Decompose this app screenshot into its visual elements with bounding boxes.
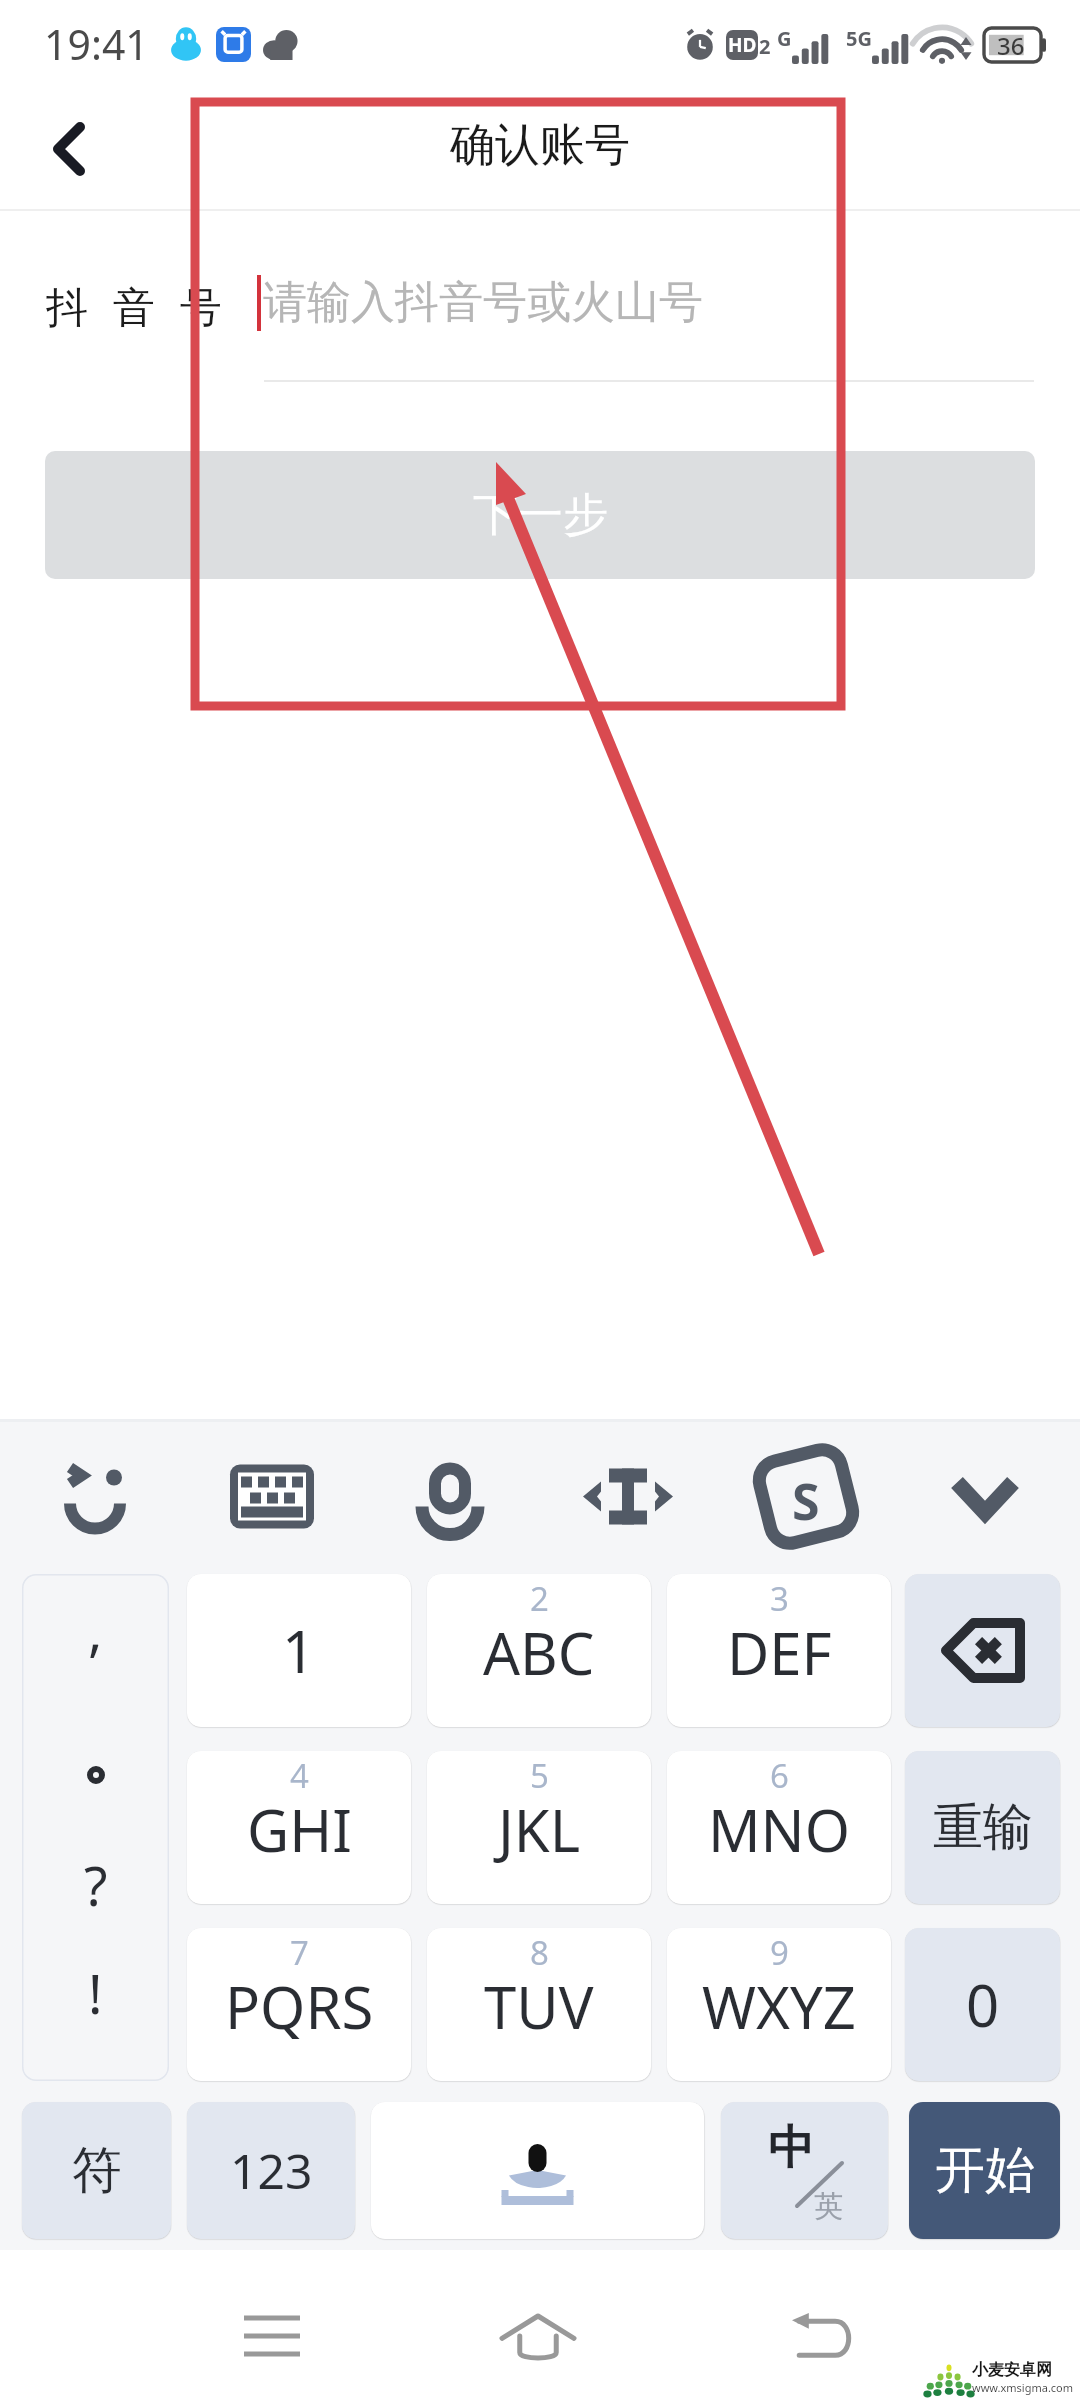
button[interactable] [371, 2102, 704, 2239]
staticText: 5 [530, 1753, 549, 1798]
button[interactable]: Home [478, 2276, 598, 2396]
button[interactable]: 6 [667, 1751, 891, 1904]
button[interactable]: 符 [22, 2102, 171, 2239]
staticText: 123 [230, 2138, 313, 2203]
staticText: WXYZ [702, 1967, 856, 2046]
button[interactable]: 7 [187, 1928, 411, 2081]
staticText: TUV [484, 1967, 594, 2046]
button[interactable]: 5 [427, 1751, 651, 1904]
button[interactable]: 4 [187, 1751, 411, 1904]
staticText: 2 [759, 33, 771, 60]
staticText: 重输 [933, 1796, 1033, 1859]
button[interactable]: , [22, 1574, 169, 2081]
staticText: 9 [770, 1930, 789, 1975]
staticText: 6 [770, 1753, 789, 1798]
staticText: G [777, 25, 792, 52]
staticText: MNO [708, 1790, 850, 1869]
button[interactable]: Emoji [0, 1419, 180, 1574]
staticText: 请输入抖音号或火山号 [263, 275, 703, 330]
staticText: 36 [997, 29, 1025, 62]
staticText: JKL [498, 1790, 581, 1869]
staticText: GHI [247, 1790, 352, 1869]
button[interactable]: 2 [427, 1574, 651, 1727]
staticText: 下一步 [473, 487, 608, 544]
staticText: 4 [290, 1753, 309, 1798]
staticText: S [792, 1467, 820, 1527]
button[interactable]: Back [14, 94, 124, 204]
button[interactable]: Sogou settings [720, 1419, 900, 1574]
staticText: 19:41 [44, 16, 149, 72]
staticText: HD [728, 32, 757, 58]
button[interactable]: 下一步 [45, 451, 1035, 579]
button[interactable]: Keyboard layout [180, 1419, 360, 1574]
staticText: 7 [290, 1930, 309, 1975]
button[interactable] [905, 1574, 1060, 1727]
staticText: 3 [770, 1576, 789, 1621]
button[interactable]: Recent apps [212, 2276, 332, 2396]
staticText: ! [88, 1956, 103, 2030]
staticText: ABC [483, 1613, 595, 1692]
staticText: www.xmsigma.com [972, 2380, 1074, 2395]
button[interactable]: 重输 [905, 1751, 1060, 1904]
button[interactable]: 9 [667, 1928, 891, 2081]
button[interactable]: Voice input [360, 1419, 540, 1574]
button[interactable]: Back [762, 2276, 882, 2396]
staticText: 开始 [935, 2139, 1035, 2202]
staticText: PQRS [225, 1967, 374, 2046]
button[interactable]: 3 [667, 1574, 891, 1727]
staticText: 1 [282, 1611, 316, 1690]
staticText: 小麦安卓网 [972, 2360, 1052, 2380]
staticText: 符 [72, 2139, 122, 2202]
button[interactable]: 123 [187, 2102, 355, 2239]
staticText: 抖 音 号 [46, 277, 229, 334]
button[interactable]: 1 [187, 1574, 411, 1727]
staticText: 英 [814, 2188, 843, 2225]
staticText: DEF [727, 1613, 832, 1692]
button[interactable] [721, 2102, 888, 2239]
button[interactable]: 开始 [909, 2102, 1060, 2239]
button[interactable]: 8 [427, 1928, 651, 2081]
button[interactable]: Hide keyboard [900, 1419, 1080, 1574]
staticText: 5G [846, 25, 872, 52]
button[interactable]: 0 [905, 1928, 1060, 2081]
staticText: ? [84, 1848, 108, 1922]
staticText: 中 [768, 2119, 814, 2177]
staticText: 确认账号 [450, 117, 630, 174]
staticText: 8 [530, 1930, 549, 1975]
staticText: , [88, 1593, 103, 1667]
button[interactable]: Text cursor [540, 1419, 720, 1574]
staticText: 2 [530, 1576, 549, 1621]
staticText: 0 [966, 1965, 1000, 2044]
